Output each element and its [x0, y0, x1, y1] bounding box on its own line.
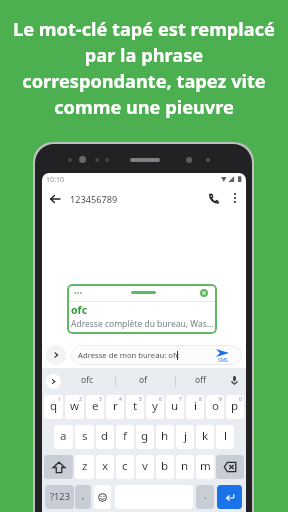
- button[interactable]: Period: [196, 485, 214, 509]
- staticText: .: [204, 489, 207, 501]
- button[interactable]: x: [96, 455, 114, 479]
- button[interactable]: c: [116, 455, 134, 479]
- staticText: 5: [139, 396, 142, 403]
- button[interactable]: Voice input: [224, 370, 245, 391]
- staticText: x: [102, 458, 109, 474]
- button[interactable]: h: [156, 425, 174, 449]
- staticText: 0: [239, 396, 242, 403]
- button[interactable]: Emoji: [94, 485, 111, 509]
- button[interactable]: t: [126, 395, 144, 419]
- button[interactable]: f: [116, 425, 134, 449]
- staticText: d: [101, 428, 109, 444]
- staticText: 6: [159, 396, 162, 403]
- button[interactable]: Enter: [217, 485, 242, 509]
- staticText: 2: [79, 396, 82, 403]
- button[interactable]: s: [75, 425, 94, 449]
- button[interactable]: ...: [67, 284, 217, 334]
- staticText: h: [161, 428, 169, 444]
- staticText: Adresse complète du bureau, Was...: [71, 318, 214, 330]
- button[interactable]: More options: [224, 187, 246, 209]
- button[interactable]: u: [166, 395, 184, 419]
- staticText: e: [92, 398, 99, 414]
- staticText: p: [231, 398, 239, 414]
- staticText: q: [50, 398, 58, 414]
- button[interactable]: of: [123, 368, 163, 392]
- staticText: y: [152, 398, 158, 414]
- staticText: s: [82, 428, 88, 444]
- staticText: 8: [199, 396, 202, 403]
- button[interactable]: d: [96, 425, 114, 449]
- staticText: 7: [179, 396, 182, 403]
- button[interactable]: y: [146, 395, 164, 419]
- staticText: of: [139, 374, 148, 386]
- staticText: SMS: [218, 357, 228, 364]
- button[interactable]: Back: [44, 188, 66, 210]
- button[interactable]: z: [75, 455, 94, 479]
- button[interactable]: Comma: [75, 485, 91, 509]
- button[interactable]: l: [216, 425, 234, 449]
- button[interactable]: Shift: [44, 455, 73, 479]
- staticText: 3: [99, 396, 102, 403]
- staticText: l: [224, 428, 227, 444]
- staticText: j: [184, 428, 187, 444]
- button[interactable]: off: [180, 368, 220, 392]
- button[interactable]: Send SMS: [216, 349, 229, 364]
- staticText: 4: [119, 396, 122, 403]
- button[interactable]: a: [54, 425, 73, 449]
- staticText: ,: [82, 489, 85, 501]
- staticText: Adresse de mon bureau: ofc: [78, 350, 180, 360]
- button[interactable]: r: [106, 395, 124, 419]
- staticText: u: [171, 398, 179, 414]
- staticText: 9: [219, 396, 222, 403]
- button[interactable]: j: [176, 425, 194, 449]
- staticText: c: [122, 458, 128, 474]
- staticText: 10:10: [46, 175, 64, 185]
- button[interactable]: Expand: [46, 345, 66, 365]
- staticText: ofc: [71, 303, 88, 317]
- staticText: Le mot-clé tapé est remplacé par la phra…: [0, 17, 288, 120]
- staticText: 123456789: [70, 193, 118, 206]
- staticText: k: [202, 428, 209, 444]
- staticText: t: [133, 398, 138, 414]
- button[interactable]: q: [44, 395, 63, 419]
- staticText: i: [194, 398, 197, 414]
- staticText: g: [141, 428, 149, 444]
- staticText: ...: [74, 284, 83, 297]
- button[interactable]: Adresse de mon bureau: ofc: [71, 345, 242, 365]
- button[interactable]: i: [186, 395, 204, 419]
- staticText: ofc: [81, 374, 94, 386]
- staticText: 1: [58, 396, 61, 403]
- staticText: w: [70, 398, 80, 414]
- staticText: r: [113, 398, 118, 414]
- staticText: m: [200, 458, 211, 474]
- button[interactable]: ?123 key: [45, 485, 74, 509]
- button[interactable]: k: [196, 425, 214, 449]
- staticText: v: [142, 458, 148, 474]
- button[interactable]: v: [136, 455, 154, 479]
- staticText: ?123: [50, 490, 70, 503]
- button[interactable]: o: [206, 395, 224, 419]
- staticText: a: [60, 428, 67, 444]
- button[interactable]: b: [156, 455, 174, 479]
- button[interactable]: Backspace: [216, 455, 244, 479]
- staticText: n: [181, 458, 189, 474]
- staticText: off: [195, 374, 206, 386]
- button[interactable]: g: [136, 425, 154, 449]
- button[interactable]: More suggestions: [46, 374, 61, 389]
- staticText: o: [212, 398, 219, 414]
- button[interactable]: w: [65, 395, 84, 419]
- staticText: f: [123, 428, 127, 444]
- staticText: b: [161, 458, 169, 474]
- button[interactable]: Call: [202, 187, 224, 209]
- staticText: z: [82, 458, 88, 474]
- button[interactable]: n: [176, 455, 194, 479]
- button[interactable]: m: [196, 455, 214, 479]
- button[interactable]: e: [86, 395, 104, 419]
- button[interactable]: p: [226, 395, 244, 419]
- button[interactable]: ofc: [67, 368, 107, 392]
